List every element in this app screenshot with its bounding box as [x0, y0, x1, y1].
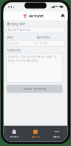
staticText: Sprint Planning: [8, 28, 30, 32]
staticText: 10:30: [38, 41, 47, 45]
staticText: 12 Jun: [8, 41, 18, 45]
button[interactable]: Sprint Planning: [6, 27, 64, 33]
staticText: Create meeting: [22, 87, 46, 91]
staticText: Events: [31, 135, 39, 138]
staticText: Start time: [36, 36, 50, 39]
staticText: Describe the problems you want to: [8, 55, 57, 58]
button[interactable]: Create meeting: [6, 85, 62, 93]
button[interactable]: Describe the problems you want to: [6, 53, 62, 82]
button[interactable]: 10:30: [36, 40, 64, 46]
staticText: Date: [6, 36, 13, 39]
staticText: More: [53, 135, 60, 138]
button[interactable]: Events: [25, 127, 46, 141]
staticText: airmeet: [29, 13, 44, 18]
button[interactable]: Account: [61, 14, 65, 18]
button[interactable]: More: [46, 127, 67, 141]
button[interactable]: airmeet: [23, 13, 44, 18]
staticText: 9:41: [7, 5, 14, 8]
staticText: Meeting title: [6, 22, 25, 26]
staticText: Home: [10, 135, 19, 138]
staticText: Problems: [6, 49, 20, 52]
staticText: solve in this meeting: [8, 59, 38, 62]
button[interactable]: 12 Jun: [6, 40, 34, 46]
button[interactable]: Home: [3, 127, 25, 141]
